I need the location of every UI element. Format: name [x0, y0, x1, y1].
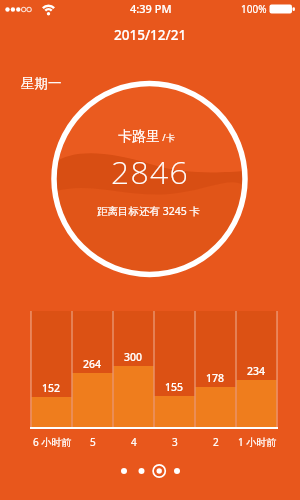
staticText: 3	[172, 435, 178, 449]
staticText: 2846	[111, 150, 190, 194]
staticText: 264	[83, 357, 102, 371]
staticText: 4:39 PM	[130, 1, 172, 16]
staticText: 星期一	[21, 75, 62, 92]
staticText: 100%	[241, 2, 267, 16]
staticText: 178	[206, 371, 225, 385]
staticText: 4	[131, 435, 137, 449]
staticText: 2	[213, 435, 219, 449]
button[interactable]	[117, 464, 131, 478]
button[interactable]	[170, 464, 184, 478]
staticText: 5	[90, 435, 96, 449]
staticText: 1 小时前	[238, 435, 277, 449]
staticText: 152	[42, 381, 61, 395]
staticText: 300	[124, 350, 143, 364]
button[interactable]	[152, 464, 166, 478]
staticText: 距离目标还有 3245 卡	[97, 204, 200, 218]
staticText: 6 小时前	[33, 435, 72, 449]
staticText: 卡路里 /卡	[118, 128, 175, 146]
button[interactable]: 卡路里 /卡	[66, 124, 226, 150]
staticText: 2015/12/21	[114, 26, 187, 44]
staticText: 155	[165, 380, 184, 394]
button[interactable]	[134, 464, 148, 478]
staticText: 234	[247, 364, 266, 378]
